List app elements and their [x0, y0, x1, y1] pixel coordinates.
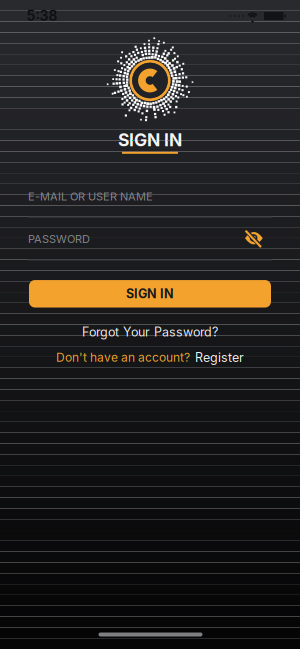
button[interactable]: E-MAIL OR USER NAME: [28, 189, 272, 218]
staticText: E-MAIL OR USER NAME: [28, 190, 153, 203]
staticText: SIGN IN: [118, 130, 182, 150]
button[interactable]: SIGN IN: [29, 280, 271, 308]
staticText: Don't have an account?: [56, 350, 190, 365]
staticText: SIGN IN: [126, 286, 174, 301]
staticText: PASSWORD: [28, 232, 90, 245]
button[interactable]: Register: [195, 350, 244, 365]
button[interactable]: Show password: [243, 228, 265, 248]
staticText: Forgot Your Password?: [82, 325, 218, 339]
button[interactable]: PASSWORD: [28, 232, 272, 261]
button[interactable]: Forgot Your Password?: [82, 325, 218, 339]
staticText: Register: [195, 350, 244, 365]
staticText: 5:38: [26, 7, 57, 24]
